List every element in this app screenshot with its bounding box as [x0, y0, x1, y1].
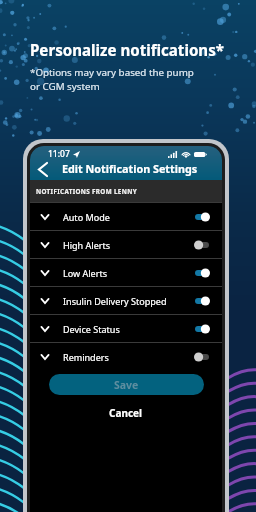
button[interactable]: Reminders: [30, 343, 222, 370]
staticText: Insulin Delivery Stopped: [63, 295, 167, 307]
button[interactable]: Disabled: [194, 239, 210, 251]
button[interactable]: Insulin Delivery Stopped: [30, 287, 222, 314]
button[interactable]: Enabled: [194, 267, 210, 279]
staticText: *Options may vary based the pump or CGM …: [30, 66, 194, 92]
staticText: Personalize notifications*: [30, 40, 224, 61]
staticText: Edit Notification Settings: [62, 161, 198, 176]
staticText: High Alerts: [63, 239, 111, 251]
button[interactable]: Disabled: [194, 351, 210, 363]
button[interactable]: Enabled: [194, 211, 210, 223]
staticText: 11:07: [48, 148, 70, 160]
button[interactable]: Enabled: [194, 295, 210, 307]
button[interactable]: High Alerts: [30, 231, 222, 258]
staticText: Cancel: [109, 406, 143, 420]
button[interactable]: Save: [49, 374, 204, 395]
button[interactable]: Low Alerts: [30, 259, 222, 286]
staticText: NOTIFICATIONS FROM LENNY: [36, 187, 137, 196]
staticText: Low Alerts: [63, 267, 108, 279]
staticText: Auto Mode: [63, 211, 110, 223]
button[interactable]: Auto Mode: [30, 203, 222, 230]
button[interactable]: Back: [34, 160, 52, 178]
button[interactable]: Enabled: [194, 323, 210, 335]
button[interactable]: Cancel: [30, 405, 222, 421]
button[interactable]: Device Status: [30, 315, 222, 342]
staticText: Device Status: [63, 323, 120, 335]
staticText: Save: [114, 378, 139, 392]
staticText: Reminders: [63, 351, 109, 363]
